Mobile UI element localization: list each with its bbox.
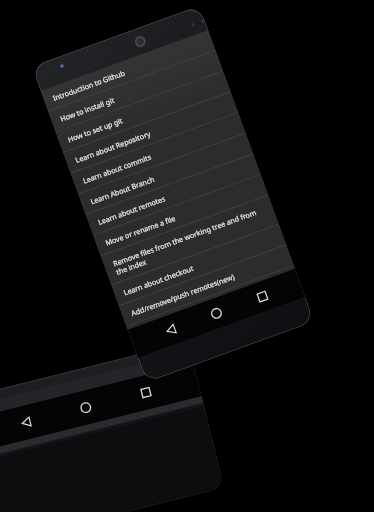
button[interactable]: Learn about Repository xyxy=(63,92,238,173)
button[interactable]: Home xyxy=(76,398,95,417)
staticText: How to install git xyxy=(59,95,116,124)
button[interactable]: Learn about commits xyxy=(71,113,245,193)
button[interactable]: Add/remove/push remotes(new) xyxy=(119,245,293,326)
staticText: Learn about Repository xyxy=(74,128,152,165)
staticText: Learn about checkout xyxy=(122,263,195,297)
staticText: How to set up git xyxy=(66,115,124,144)
button[interactable]: Learn about remotes xyxy=(86,154,260,235)
button[interactable]: Move or rename a file xyxy=(93,175,268,255)
button[interactable]: Learn About Branch xyxy=(78,133,253,214)
staticText: Learn About Branch xyxy=(89,174,156,206)
button[interactable]: How to install git xyxy=(48,51,223,131)
button[interactable]: Learn about checkout xyxy=(112,225,286,305)
button[interactable]: Back xyxy=(161,319,182,340)
staticText: Remove files from the working tree and f… xyxy=(111,203,271,277)
button[interactable]: Recent apps xyxy=(252,286,273,307)
button[interactable]: Introduction to Github xyxy=(41,30,215,111)
staticText: Move or rename a file xyxy=(104,213,177,248)
button[interactable]: Recent apps xyxy=(136,383,156,402)
button[interactable]: Back xyxy=(17,413,36,432)
staticText: Learn about remotes xyxy=(96,193,167,227)
staticText: Introduction to Github xyxy=(51,68,126,103)
staticText: Add/remove/push remotes(new) xyxy=(130,271,236,318)
staticText: Learn about commits xyxy=(81,152,152,186)
button[interactable]: How to set up git xyxy=(56,71,230,152)
button[interactable]: Home xyxy=(206,303,227,324)
button[interactable]: Remove files from the working tree and f… xyxy=(101,195,278,285)
